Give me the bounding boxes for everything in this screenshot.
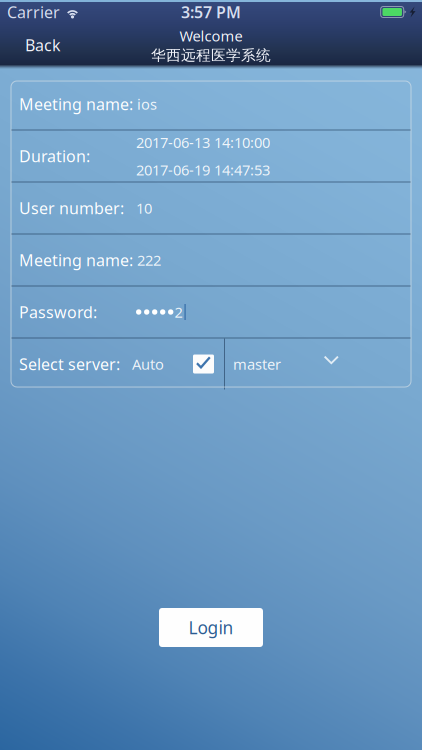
staticText: Duration: [19, 145, 90, 167]
staticText: 2017-06-13 14:10:00 [136, 132, 270, 152]
staticText: 2017-06-19 14:47:53 [136, 160, 270, 179]
staticText: 3:57 PM [181, 1, 241, 23]
button[interactable]: master [225, 338, 411, 389]
staticText: Back [25, 34, 61, 56]
staticText: 10 [136, 198, 152, 218]
staticText: ios [137, 94, 157, 114]
staticText: Carrier [7, 1, 60, 23]
staticText: master [233, 354, 281, 374]
staticText: Welcome [179, 26, 242, 45]
staticText: Select server: [19, 353, 120, 375]
staticText: 华西远程医学系统 [151, 46, 271, 64]
staticText: Password: [19, 301, 97, 323]
button[interactable]: Login [159, 608, 263, 647]
staticText: Auto [132, 354, 164, 374]
staticText: 2 [174, 302, 182, 322]
staticText: 222 [137, 250, 161, 270]
button[interactable]: Auto server toggle [193, 354, 214, 373]
button[interactable]: Back [11, 28, 75, 62]
staticText: Meeting name: [19, 93, 133, 115]
staticText: Meeting name: [19, 249, 133, 271]
staticText: Login [188, 616, 233, 639]
staticText: User number: [19, 197, 124, 219]
